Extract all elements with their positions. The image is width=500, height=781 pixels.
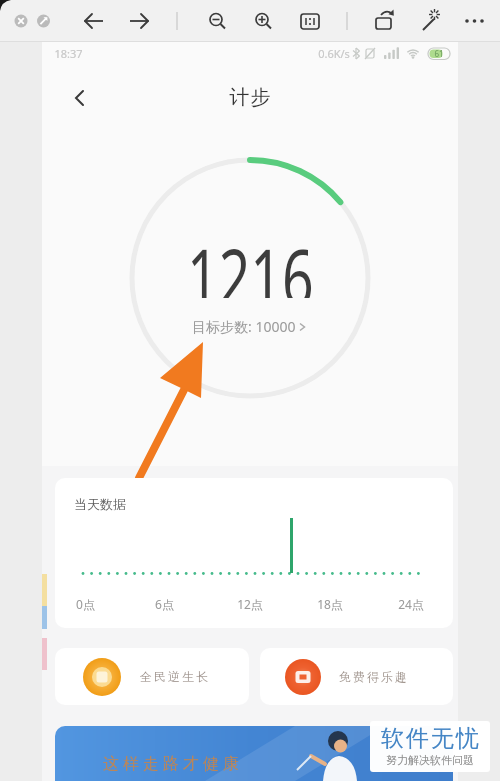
staticText: 计步: [229, 85, 271, 110]
staticText: 18点: [317, 596, 343, 612]
staticText: 18:37: [54, 46, 83, 61]
staticText: 61: [434, 48, 444, 59]
staticText: 12点: [237, 596, 263, 612]
button[interactable]: 这样走路才健康: [55, 726, 453, 781]
staticText: 1216: [187, 222, 314, 298]
staticText: 免费得乐趣: [338, 669, 408, 684]
button[interactable]: 全民逆生长: [55, 648, 249, 705]
button[interactable]: 免费得乐趣: [260, 648, 453, 705]
staticText: 6点: [155, 596, 174, 612]
staticText: 这样走路才健康: [101, 754, 241, 774]
staticText: 当天数据: [74, 496, 126, 512]
staticText: 目标步数: 10000: [192, 317, 296, 336]
button[interactable]: 目标步数: 10000: [170, 313, 330, 339]
staticText: 0.6K/s: [318, 46, 350, 61]
staticText: 软件无忧: [380, 724, 480, 753]
button[interactable]: [64, 82, 96, 114]
staticText: 24点: [398, 596, 424, 612]
staticText: 努力解决软件问题: [386, 753, 474, 767]
staticText: 全民逆生长: [139, 669, 209, 684]
staticText: 0点: [76, 596, 95, 612]
